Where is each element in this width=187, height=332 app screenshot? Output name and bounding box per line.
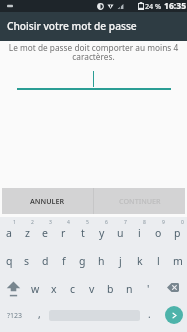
button[interactable]: Backspace xyxy=(158,273,187,301)
staticText: y xyxy=(99,226,105,240)
staticText: Choisir votre mot de passe xyxy=(7,19,137,33)
staticText: , xyxy=(38,307,41,321)
button[interactable]: l xyxy=(149,245,168,273)
staticText: l xyxy=(157,254,160,268)
staticText: CONTINUER xyxy=(119,196,161,206)
staticText: 16:35 xyxy=(164,0,187,12)
staticText: m xyxy=(173,254,183,268)
button[interactable]: q xyxy=(0,245,18,273)
button[interactable]: Enter xyxy=(165,306,183,324)
staticText: o xyxy=(155,226,162,240)
button[interactable]: 4 xyxy=(54,217,73,245)
staticText: 7 xyxy=(124,219,127,226)
button[interactable]: 1 xyxy=(0,217,18,245)
button[interactable]: x xyxy=(44,273,63,301)
staticText: 3 xyxy=(49,219,52,226)
button[interactable]: m xyxy=(168,245,187,273)
staticText: r xyxy=(61,226,66,240)
staticText: i xyxy=(138,226,141,240)
staticText: 2 xyxy=(31,219,34,226)
staticText: d xyxy=(42,254,49,268)
button[interactable]: 8 xyxy=(130,217,149,245)
button[interactable]: h xyxy=(92,245,111,273)
button[interactable]: Shift xyxy=(0,273,26,301)
staticText: x xyxy=(51,282,57,296)
staticText: 9 xyxy=(162,219,165,226)
staticText: e xyxy=(42,226,48,240)
button[interactable]: k xyxy=(130,245,149,273)
staticText: p xyxy=(174,226,181,240)
staticText: . xyxy=(148,307,151,321)
staticText: 8 xyxy=(143,219,146,226)
button[interactable]: . xyxy=(140,301,158,329)
staticText: ?123 xyxy=(7,311,23,321)
button[interactable]: 2 xyxy=(18,217,36,245)
staticText: 4 xyxy=(67,219,70,226)
button[interactable]: f xyxy=(54,245,73,273)
staticText: s xyxy=(24,254,30,268)
staticText: ' xyxy=(147,282,150,296)
staticText: t xyxy=(81,226,85,240)
staticText: v xyxy=(89,282,95,296)
staticText: Le mot de passe doit comporter au moins … xyxy=(6,42,181,62)
staticText: u xyxy=(117,226,124,240)
staticText: 6 xyxy=(105,219,108,226)
staticText: 24 % xyxy=(145,1,162,11)
button[interactable]: b xyxy=(101,273,120,301)
staticText: b xyxy=(107,282,114,296)
button[interactable]: , xyxy=(29,301,49,329)
button[interactable]: 7 xyxy=(111,217,130,245)
button[interactable]: g xyxy=(73,245,92,273)
button[interactable]: s xyxy=(18,245,36,273)
button[interactable]: ?123 xyxy=(0,301,29,329)
button[interactable]: w xyxy=(26,273,44,301)
staticText: q xyxy=(6,254,13,268)
button[interactable]: v xyxy=(82,273,101,301)
staticText: w xyxy=(31,282,40,296)
button[interactable]: ' xyxy=(139,273,158,301)
staticText: ANNULER xyxy=(30,196,65,206)
staticText: 1 xyxy=(13,219,16,226)
staticText: f xyxy=(62,254,66,268)
button[interactable]: 5 xyxy=(73,217,92,245)
button[interactable]: 0 xyxy=(168,217,187,245)
staticText: j xyxy=(119,254,122,268)
button[interactable]: j xyxy=(111,245,130,273)
staticText: k xyxy=(137,254,143,268)
staticText: n xyxy=(126,282,133,296)
button[interactable]: CONTINUER xyxy=(94,188,185,214)
button[interactable]: 6 xyxy=(92,217,111,245)
button[interactable]: c xyxy=(63,273,82,301)
button[interactable]: ANNULER xyxy=(2,188,93,214)
staticText: 5 xyxy=(86,219,89,226)
staticText: g xyxy=(79,254,86,268)
button[interactable]: d xyxy=(36,245,54,273)
button[interactable]: 3 xyxy=(36,217,54,245)
staticText: h xyxy=(98,254,105,268)
staticText: a xyxy=(6,226,12,240)
staticText: z xyxy=(25,226,30,240)
button[interactable]: n xyxy=(120,273,139,301)
button[interactable]: 9 xyxy=(149,217,168,245)
staticText: c xyxy=(70,282,76,296)
staticText: 0 xyxy=(181,219,184,226)
